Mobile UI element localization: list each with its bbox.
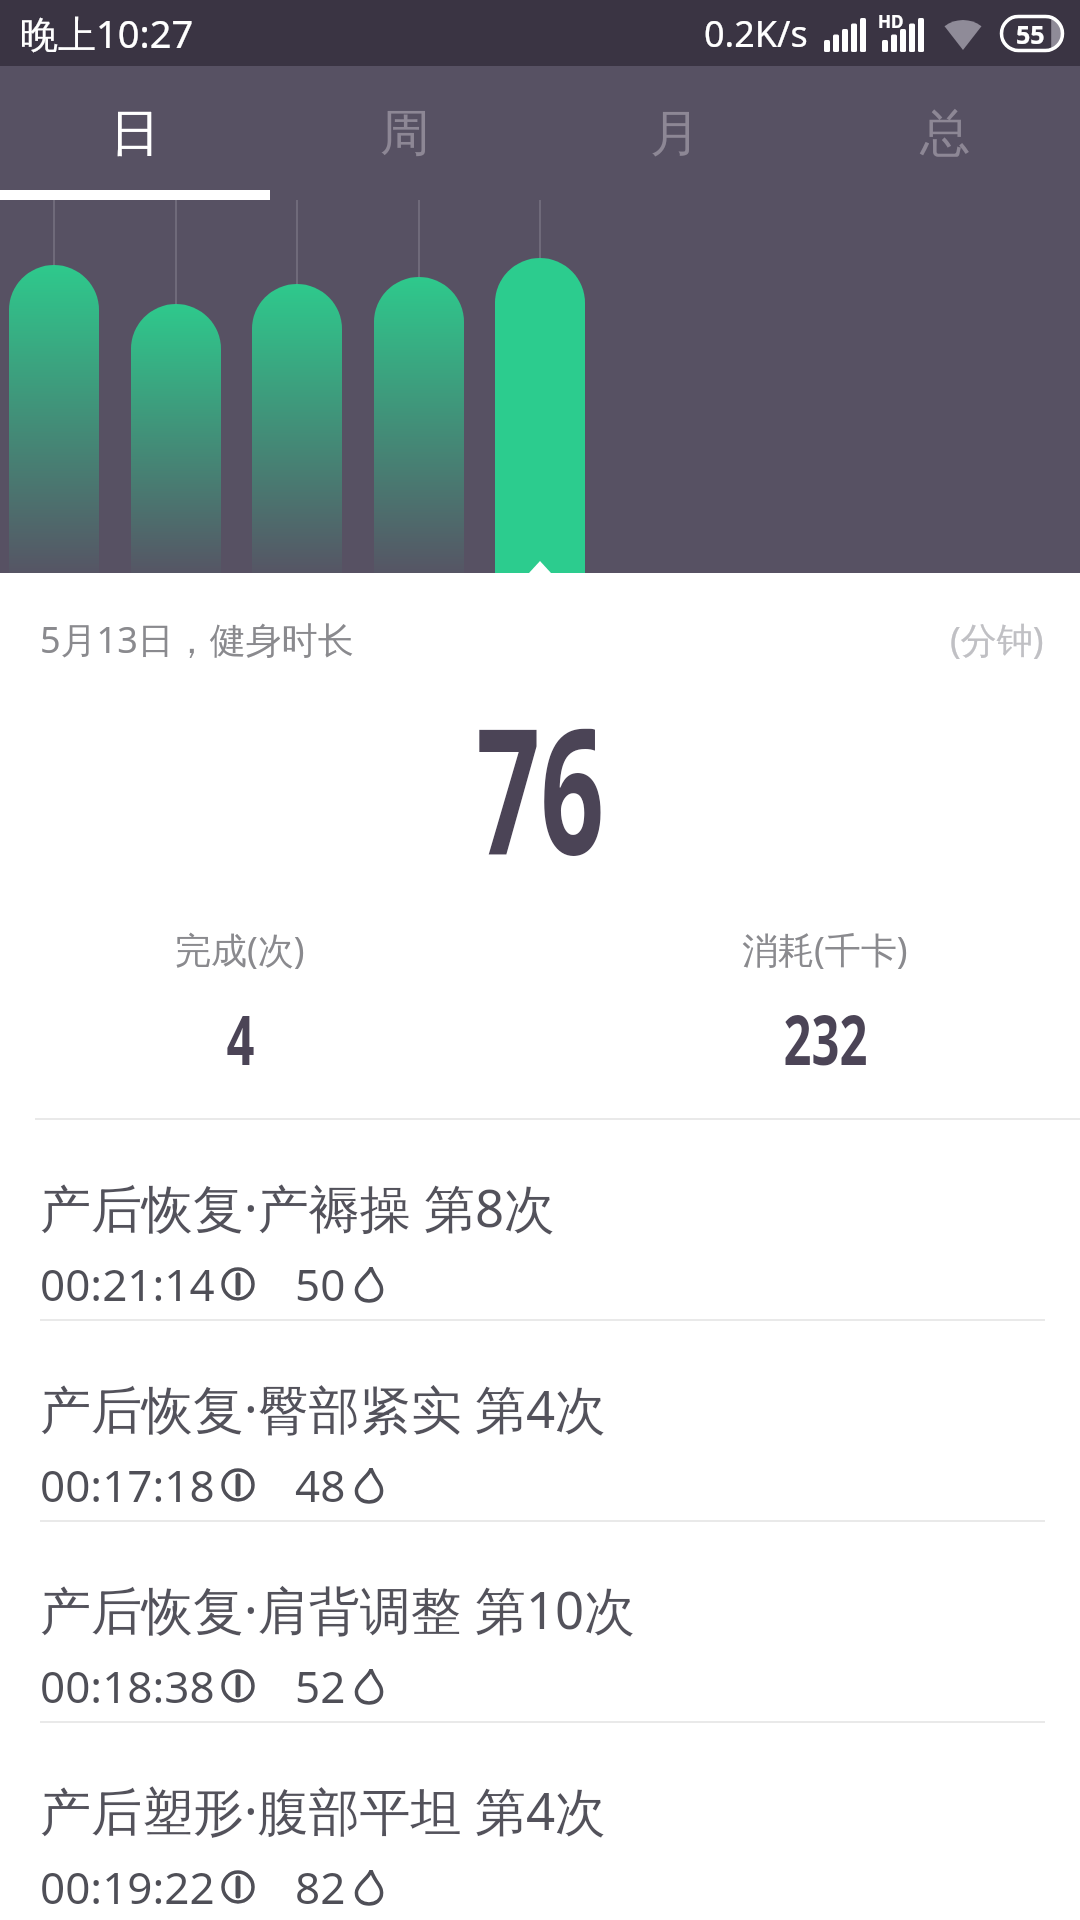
staticText: 00:18:38 — [40, 1656, 215, 1716]
staticText: 产后恢复·产褥操 第8次 — [40, 1172, 556, 1242]
staticText: 完成(次) — [175, 925, 305, 974]
button[interactable]: 产后塑形·腹部平坦 第4次 — [0, 1723, 1080, 1920]
staticText: 日 — [110, 102, 160, 165]
button[interactable]: 周 — [270, 66, 540, 200]
staticText: 00:21:14 — [40, 1254, 215, 1314]
staticText: 产后恢复·肩背调整 第10次 — [40, 1574, 636, 1644]
staticText: 00:19:22 — [40, 1857, 215, 1917]
staticText: 总 — [920, 102, 970, 165]
staticText: 76 — [476, 667, 605, 887]
staticText: 4 — [226, 992, 255, 1085]
button[interactable]: 月 — [540, 66, 810, 200]
button[interactable]: 产后恢复·产褥操 第8次 — [0, 1120, 1080, 1321]
staticText: 50 — [295, 1254, 346, 1314]
staticText: 消耗(千卡) — [742, 925, 908, 974]
staticText: 产后恢复·臀部紧实 第4次 — [40, 1373, 607, 1443]
staticText: (分钟) — [950, 615, 1044, 664]
button[interactable]: 产后恢复·臀部紧实 第4次 — [0, 1321, 1080, 1522]
button[interactable]: 日 — [0, 66, 270, 200]
staticText: 晚上10:27 — [20, 7, 194, 59]
staticText: HD — [878, 10, 904, 33]
staticText: 52 — [295, 1656, 346, 1716]
staticText: 00:17:18 — [40, 1455, 215, 1515]
staticText: 5月13日，健身时长 — [40, 615, 354, 664]
button[interactable]: 总 — [810, 66, 1080, 200]
staticText: 232 — [783, 992, 868, 1085]
staticText: 82 — [295, 1857, 346, 1917]
button[interactable]: 产后恢复·肩背调整 第10次 — [0, 1522, 1080, 1723]
staticText: 55 — [1016, 17, 1045, 51]
staticText: 48 — [295, 1455, 346, 1515]
staticText: 周 — [380, 102, 430, 165]
staticText: 产后塑形·腹部平坦 第4次 — [40, 1775, 607, 1845]
staticText: 0.2K/s — [704, 9, 808, 58]
staticText: 月 — [650, 102, 700, 165]
